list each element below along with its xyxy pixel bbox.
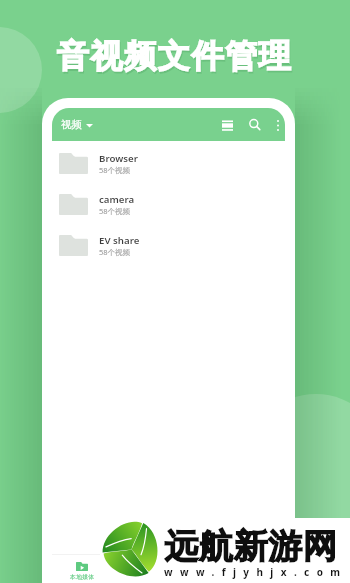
button[interactable]: Search — [244, 111, 266, 139]
button[interactable]: camera — [52, 184, 285, 225]
button[interactable]: More options — [270, 111, 285, 139]
staticText: 本地媒体 — [70, 573, 94, 581]
button[interactable]: Browser — [52, 143, 285, 184]
button[interactable] — [111, 560, 169, 583]
staticText: camera — [99, 193, 135, 206]
staticText: 视频 — [61, 118, 82, 131]
staticText: 58个视频 — [99, 165, 131, 175]
staticText: Browser — [99, 152, 138, 165]
staticText: 远航新游网 — [164, 525, 337, 568]
button[interactable]: EV share — [52, 225, 285, 266]
button[interactable] — [227, 560, 285, 583]
button[interactable] — [169, 560, 227, 583]
button[interactable]: 视频 — [59, 114, 95, 135]
staticText: EV share — [99, 234, 140, 247]
staticText: 音视频文件管理 — [57, 36, 293, 76]
staticText: www.fjyhjx.com — [164, 565, 348, 579]
button[interactable]: Switch view — [216, 111, 238, 139]
staticText: 58个视频 — [99, 206, 131, 216]
button[interactable]: 本地媒体 — [52, 560, 111, 583]
staticText: 58个视频 — [99, 247, 131, 257]
staticText: 音视频文件管理 — [58, 38, 294, 78]
